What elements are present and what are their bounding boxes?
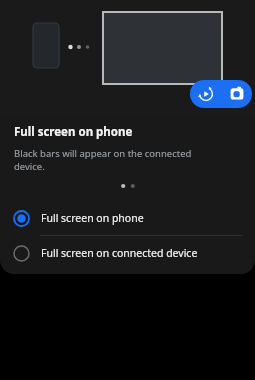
staticText: Full screen on phone — [14, 124, 133, 140]
staticText: Black bars will appear on the connected … — [14, 147, 192, 173]
button[interactable]: Full screen on connected device — [0, 236, 255, 270]
staticText: Full screen on phone — [41, 211, 144, 225]
button[interactable]: Full screen on phone — [0, 201, 255, 235]
button[interactable]: Rotate screen — [190, 80, 221, 108]
button[interactable]: Capture screenshot — [221, 80, 252, 108]
staticText: Full screen on connected device — [41, 246, 198, 260]
